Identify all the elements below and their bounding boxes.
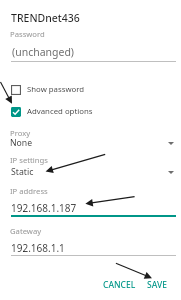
staticText: Proxy — [10, 128, 31, 138]
staticText: Advanced options — [27, 106, 93, 117]
other: Expand — [168, 142, 174, 145]
staticText: 192.168.1.1 — [11, 241, 65, 255]
staticText: Show password — [27, 84, 85, 95]
staticText: None — [10, 137, 33, 149]
other: Expand — [168, 171, 174, 174]
staticText: TRENDnet436 — [11, 11, 80, 25]
staticText: (unchanged) — [12, 45, 75, 59]
staticText: Gateway — [10, 226, 42, 236]
button[interactable]: SAVE — [142, 274, 172, 296]
button[interactable]: Advanced options — [11, 106, 93, 117]
button[interactable] — [0, 127, 181, 150]
staticText: 192.168.1.187 — [11, 201, 77, 215]
button[interactable]: CANCEL — [98, 274, 141, 296]
button[interactable] — [0, 156, 181, 179]
staticText: CANCEL — [103, 279, 136, 291]
staticText: SAVE — [147, 279, 167, 291]
button[interactable]: Show password — [11, 84, 85, 95]
staticText: IP settings — [10, 155, 48, 165]
staticText: IP address — [10, 186, 48, 196]
staticText: Static — [11, 166, 34, 178]
staticText: Password — [10, 29, 45, 39]
